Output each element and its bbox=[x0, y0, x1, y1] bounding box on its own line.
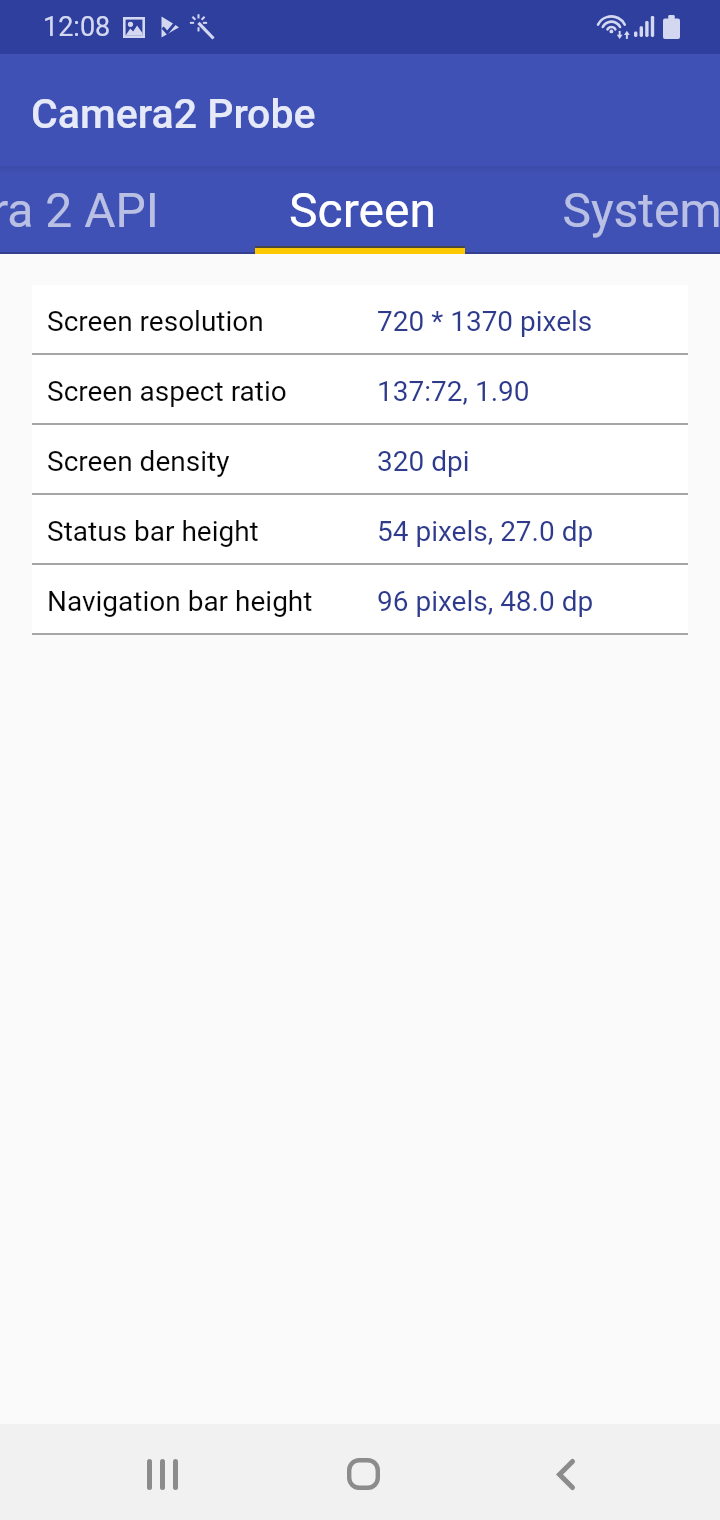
staticText: Camera 2 API bbox=[0, 182, 159, 238]
button[interactable]: Screen aspect ratio bbox=[32, 355, 688, 423]
staticText: 54 pixels, 27.0 dp bbox=[377, 515, 594, 548]
staticText: 720 * 1370 pixels bbox=[377, 305, 593, 338]
staticText: 137:72, 1.90 bbox=[377, 375, 530, 408]
staticText: Status bar height bbox=[47, 515, 377, 548]
button[interactable]: Back bbox=[518, 1426, 614, 1520]
button[interactable]: System bbox=[495, 166, 720, 254]
staticText: Screen aspect ratio bbox=[47, 375, 377, 408]
staticText: Screen bbox=[289, 182, 436, 238]
button[interactable]: Screen bbox=[222, 166, 503, 254]
button[interactable]: Recent apps bbox=[114, 1426, 210, 1520]
staticText: 96 pixels, 48.0 dp bbox=[377, 585, 594, 618]
button[interactable]: Navigation bar height bbox=[32, 565, 688, 633]
staticText: 12:08 bbox=[43, 11, 111, 43]
button[interactable]: Camera 2 API bbox=[0, 166, 226, 254]
staticText: Screen density bbox=[47, 445, 377, 478]
staticText: Screen resolution bbox=[47, 305, 377, 338]
button[interactable]: Home bbox=[315, 1426, 411, 1520]
staticText: System bbox=[562, 182, 720, 238]
button[interactable]: Screen density bbox=[32, 425, 688, 493]
button[interactable]: Screen resolution bbox=[32, 285, 688, 353]
staticText: Navigation bar height bbox=[47, 585, 377, 618]
staticText: 320 dpi bbox=[377, 445, 470, 478]
button[interactable]: Status bar height bbox=[32, 495, 688, 563]
staticText: Camera2 Probe bbox=[31, 90, 316, 138]
